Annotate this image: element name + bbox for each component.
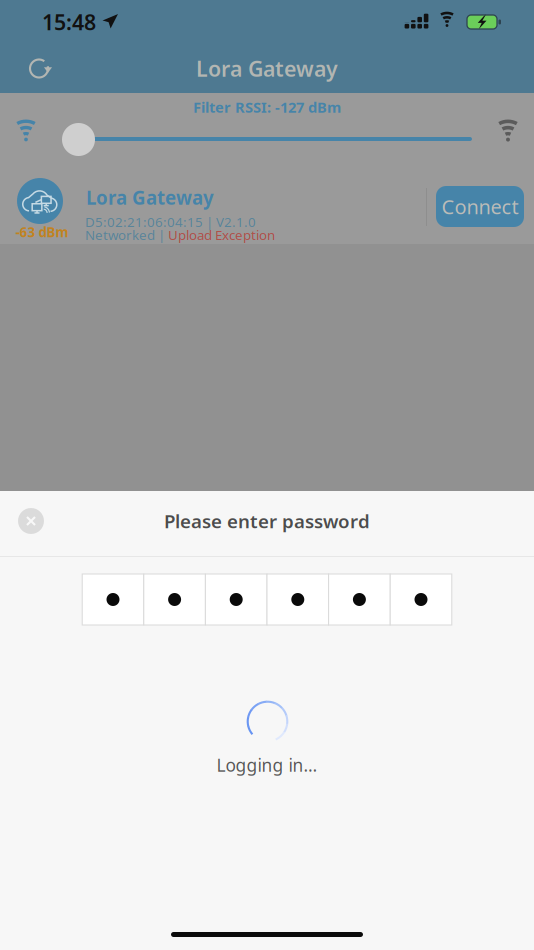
staticText: Please enter password — [164, 509, 370, 533]
staticText: Networked | — [85, 226, 168, 244]
staticText: Connect — [441, 193, 518, 220]
staticText: Logging in… — [216, 753, 317, 776]
staticText: Lora Gateway — [86, 185, 214, 210]
button[interactable]: Password digit — [390, 574, 452, 625]
staticText: Lora Gateway — [196, 54, 338, 83]
button[interactable]: Password digit — [82, 574, 144, 625]
button[interactable]: Refresh — [19, 48, 59, 88]
button[interactable]: Close — [9, 499, 53, 543]
button[interactable]: Password digit — [329, 574, 390, 625]
staticText: Filter RSSI: -127 dBm — [193, 97, 341, 117]
button[interactable]: Connect — [436, 186, 524, 227]
button[interactable]: Password digit — [267, 574, 329, 625]
button[interactable]: Password digit — [144, 574, 205, 625]
button[interactable]: Password digit — [205, 574, 267, 625]
staticText: Upload Exception — [168, 226, 275, 244]
staticText: -63 dBm — [15, 223, 68, 241]
staticText: D5:02:21:06:04:15 | V2.1.0 — [85, 213, 256, 231]
staticText: 15:48 — [42, 8, 96, 36]
